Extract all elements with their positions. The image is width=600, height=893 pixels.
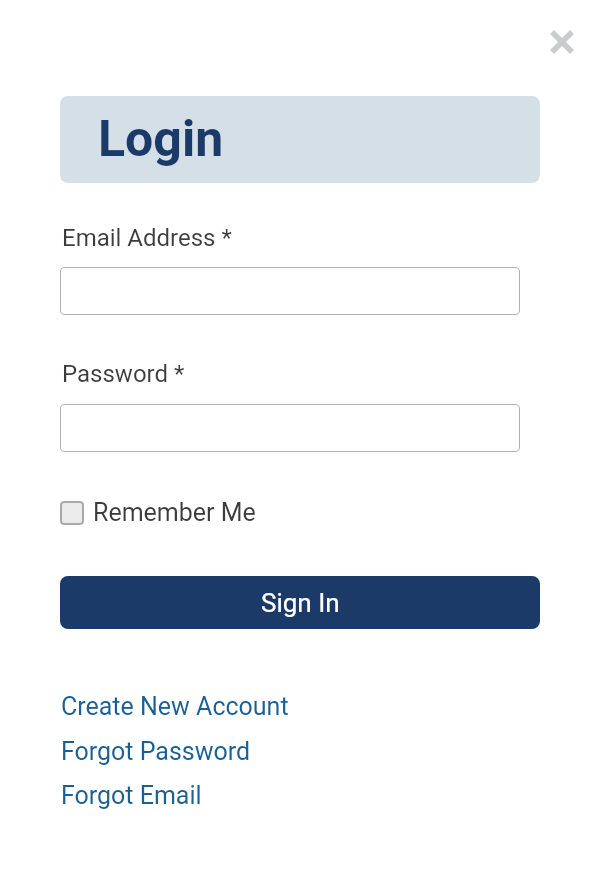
staticText: Email Address * (62, 224, 232, 252)
button[interactable] (60, 404, 520, 452)
button[interactable]: Forgot Email (61, 781, 202, 810)
staticText: Sign In (261, 588, 340, 618)
button[interactable]: Sign In (60, 576, 540, 629)
staticText: Login (98, 110, 224, 169)
staticText: Remember Me (93, 498, 256, 527)
button[interactable]: Remember Me (60, 498, 256, 527)
button[interactable] (60, 267, 520, 315)
button[interactable]: Forgot Password (61, 737, 251, 766)
staticText: Password * (62, 360, 185, 388)
button[interactable]: Create New Account (61, 692, 289, 721)
button[interactable] (540, 20, 584, 64)
